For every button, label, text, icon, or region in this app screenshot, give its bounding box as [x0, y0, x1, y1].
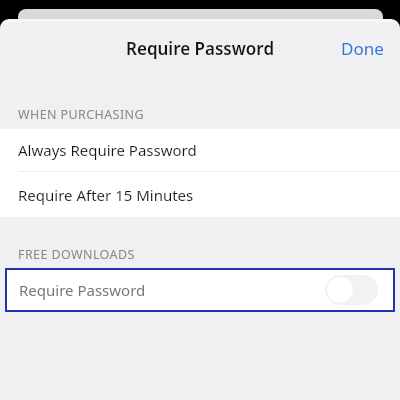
button[interactable]: Done [325, 29, 400, 68]
button[interactable]: Require Password toggle [325, 275, 378, 305]
staticText: Require Password [19, 280, 146, 300]
staticText: Require Password [126, 37, 275, 60]
button[interactable]: Require After 15 Minutes [0, 172, 400, 217]
button[interactable]: Require Password [5, 268, 395, 312]
staticText: Require After 15 Minutes [18, 185, 194, 205]
staticText: FREE DOWNLOADS [18, 246, 135, 263]
staticText: Done [341, 37, 384, 60]
staticText: Always Require Password [18, 140, 197, 160]
staticText: WHEN PURCHASING [18, 106, 144, 123]
button[interactable]: Always Require Password [0, 129, 400, 171]
